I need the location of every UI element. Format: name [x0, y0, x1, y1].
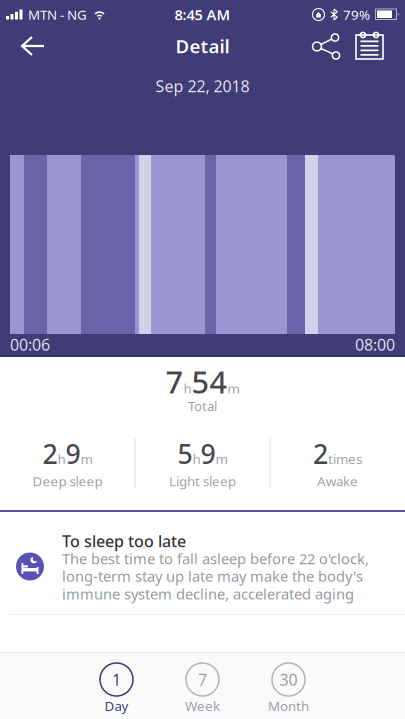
- staticText: 8:45 AM: [174, 5, 230, 24]
- staticText: Week: [185, 697, 220, 715]
- button[interactable]: Sep 22, 2018: [155, 66, 249, 106]
- staticText: 5: [177, 436, 192, 471]
- staticText: 9: [200, 436, 215, 471]
- staticText: 54: [191, 361, 227, 402]
- button[interactable]: [348, 26, 392, 66]
- staticText: Light sleep: [169, 472, 236, 490]
- staticText: h: [192, 450, 200, 468]
- staticText: Detail: [175, 34, 229, 58]
- button[interactable]: [12, 26, 56, 66]
- staticText: 79%: [343, 6, 370, 23]
- staticText: Deep sleep: [32, 472, 102, 490]
- staticText: m: [80, 450, 92, 468]
- staticText: 9: [65, 436, 80, 471]
- button[interactable]: 1: [93, 663, 139, 715]
- staticText: times: [328, 450, 362, 468]
- staticText: 30: [279, 669, 297, 690]
- staticText: Total: [188, 397, 217, 415]
- button[interactable]: 30: [265, 663, 311, 715]
- staticText: h: [183, 379, 191, 397]
- staticText: MTN - NG: [28, 6, 87, 23]
- staticText: 2: [42, 436, 57, 471]
- staticText: 7: [165, 361, 183, 402]
- staticText: Day: [104, 697, 128, 715]
- staticText: Sep 22, 2018: [155, 75, 249, 97]
- staticText: m: [215, 450, 227, 468]
- button[interactable]: [308, 26, 348, 66]
- staticText: 2: [313, 436, 328, 471]
- staticText: h: [57, 450, 65, 468]
- staticText: m: [227, 379, 239, 397]
- staticText: The best time to fall asleep before 22 o…: [62, 550, 369, 602]
- staticText: 08:00: [355, 334, 395, 355]
- staticText: 1: [112, 669, 121, 690]
- staticText: To sleep too late: [62, 530, 186, 552]
- button[interactable]: 7: [179, 663, 225, 715]
- staticText: 7: [198, 669, 207, 690]
- staticText: Month: [268, 697, 309, 715]
- staticText: Awake: [317, 472, 358, 490]
- staticText: 00:06: [10, 334, 50, 355]
